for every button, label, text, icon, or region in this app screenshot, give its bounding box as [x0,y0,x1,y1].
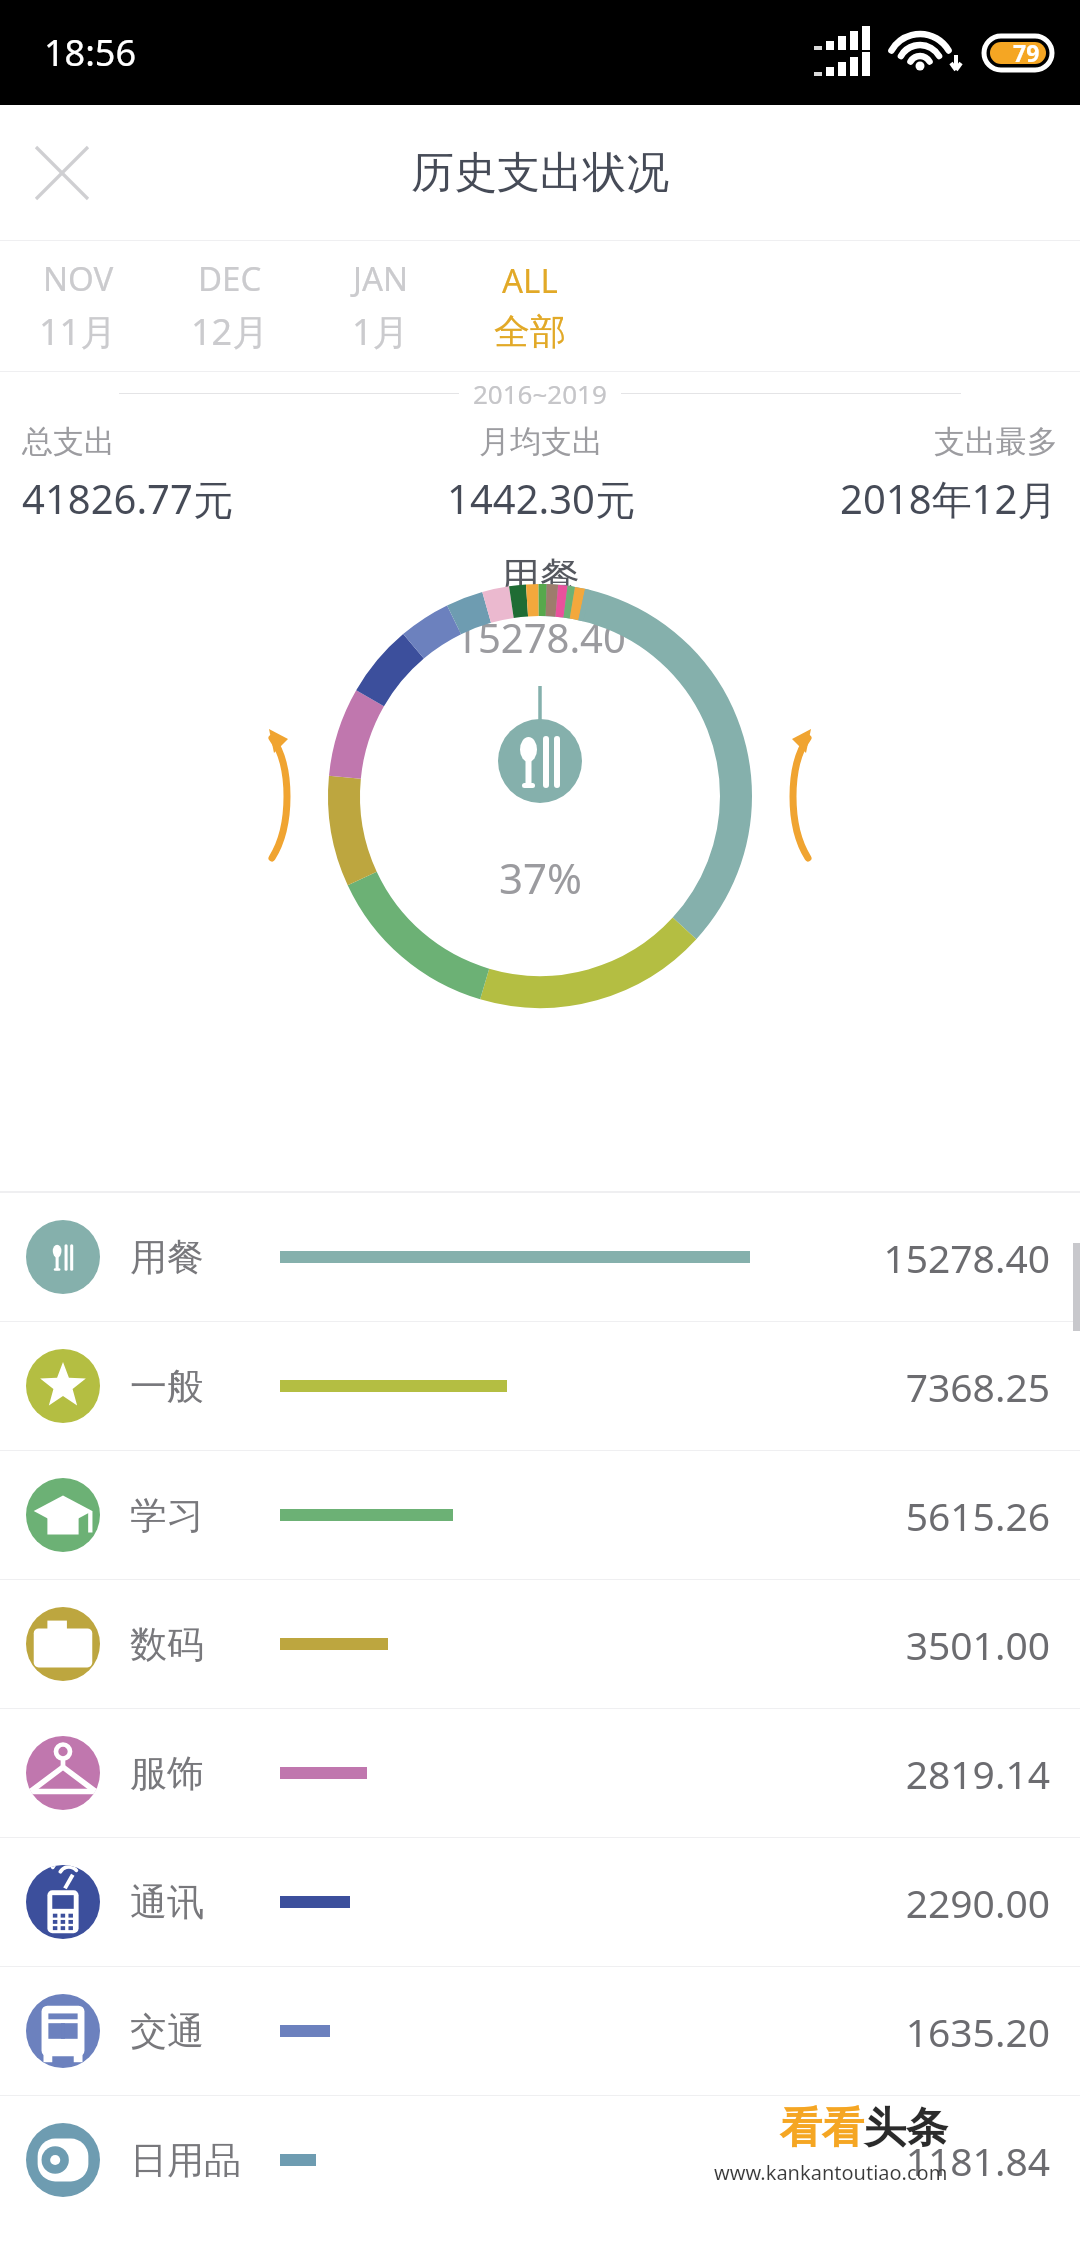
staticText: www.kankantoutiao.com [714,2159,948,2186]
button[interactable]: NOV [0,241,155,371]
staticText: 11月 [39,307,117,356]
staticText: 用餐 [500,552,580,602]
staticText: 头条 [864,2102,948,2155]
staticText: JAN [353,256,409,301]
staticText: 12月 [191,307,269,356]
staticText: 5615.26 [750,1489,1050,1542]
staticText: 7368.25 [750,1360,1050,1413]
staticText: ALL [502,258,558,303]
staticText: 2819.14 [750,1747,1050,1800]
button[interactable]: 通讯 [0,1838,1080,1966]
staticText: 历史支出状况 [411,146,669,200]
staticText: 用餐 [130,1234,280,1281]
button[interactable]: JAN [305,241,455,371]
staticText: 41826.77元 [22,471,233,526]
button[interactable]: 学习 [0,1451,1080,1579]
staticText: 一般 [130,1363,280,1410]
staticText: 15278.40 [455,610,626,664]
staticText: 79 [1013,37,1040,68]
button[interactable]: 交通 [0,1967,1080,2095]
button[interactable]: 一般 [0,1322,1080,1450]
staticText: 学习 [130,1492,280,1539]
staticText: 2018年12月 [840,471,1058,526]
button[interactable]: DEC [155,241,305,371]
staticText: 1181.84 [750,2134,1050,2187]
staticText: 月均支出 [479,422,603,461]
button[interactable]: Close [14,125,110,221]
staticText: DEC [198,256,262,301]
staticText: 1635.20 [750,2005,1050,2058]
staticText: 日用品 [130,2137,280,2184]
staticText: 1442.30元 [447,471,635,526]
staticText: 37% [499,849,582,906]
staticText: 15278.40 [750,1231,1050,1284]
button[interactable]: ALL [455,241,605,371]
staticText: 2290.00 [750,1876,1050,1929]
staticText: 18:56 [44,28,137,77]
staticText: 通讯 [130,1879,280,1926]
staticText: 3501.00 [750,1618,1050,1671]
staticText: 数码 [130,1621,280,1668]
button[interactable]: 数码 [0,1580,1080,1708]
staticText: 1月 [352,307,409,356]
staticText: 全部 [494,309,566,354]
button[interactable]: 服饰 [0,1709,1080,1837]
button[interactable]: 用餐 [0,1193,1080,1321]
staticText: 服饰 [130,1750,280,1797]
staticText: 2016~2019 [473,376,607,411]
staticText: 支出最多 [934,422,1058,461]
button[interactable]: 日用品 [0,2096,1080,2224]
staticText: 总支出 [22,422,115,461]
staticText: NOV [43,256,114,301]
staticText: 交通 [130,2008,280,2055]
staticText: 看看 [780,2102,864,2155]
